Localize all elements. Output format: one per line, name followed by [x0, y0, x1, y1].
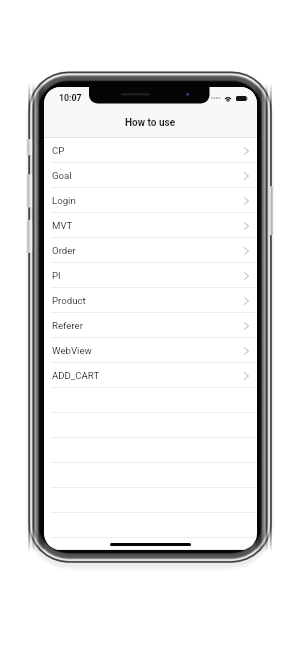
button[interactable]: CP: [44, 138, 257, 163]
staticText: WebView: [52, 345, 92, 356]
button[interactable]: Product: [44, 288, 257, 313]
button[interactable]: PI: [44, 263, 257, 288]
staticText: Login: [52, 195, 76, 206]
button[interactable]: WebView: [44, 338, 257, 363]
staticText: Goal: [52, 170, 72, 181]
staticText: PI: [52, 270, 61, 281]
staticText: Product: [52, 295, 86, 306]
staticText: MVT: [52, 220, 73, 231]
staticText: CP: [52, 145, 65, 156]
button[interactable]: Order: [44, 238, 257, 263]
staticText: Referer: [52, 320, 83, 331]
button[interactable]: Goal: [44, 163, 257, 188]
button[interactable]: Login: [44, 188, 257, 213]
button[interactable]: ADD_CART: [44, 363, 257, 388]
button[interactable]: MVT: [44, 213, 257, 238]
button[interactable]: Referer: [44, 313, 257, 338]
staticText: How to use: [125, 117, 176, 129]
staticText: ADD_CART: [52, 370, 100, 381]
staticText: 10:07: [59, 93, 82, 103]
staticText: Order: [52, 245, 76, 256]
